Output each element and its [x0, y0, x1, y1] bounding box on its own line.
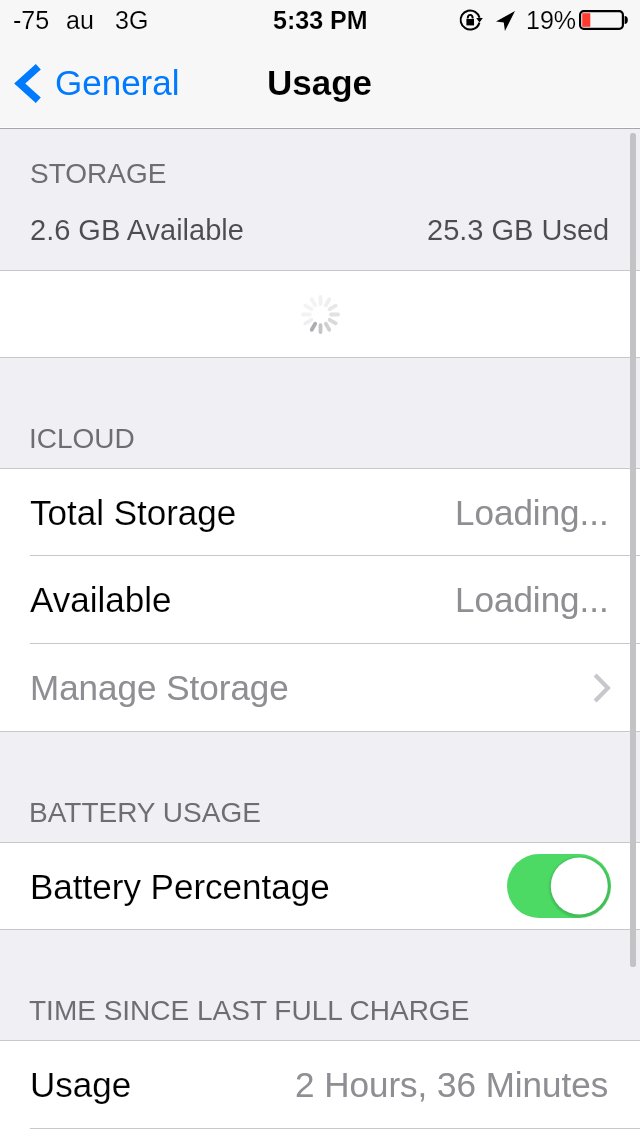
button[interactable]: Battery Percentage	[0, 843, 640, 929]
button[interactable]: General	[0, 40, 194, 127]
staticText: Manage Storage	[30, 668, 289, 707]
staticText: Usage	[267, 63, 373, 102]
staticText: au	[66, 6, 94, 34]
staticText: Battery Percentage	[30, 867, 330, 906]
staticText: 5:33 PM	[273, 6, 368, 34]
button[interactable]: Usage	[0, 1041, 640, 1128]
staticText: STORAGE	[30, 158, 167, 189]
staticText: General	[55, 63, 180, 102]
other: Rotation lock	[460, 9, 483, 31]
staticText: BATTERY USAGE	[29, 797, 261, 828]
staticText: Loading...	[455, 493, 609, 532]
button[interactable]: Battery Percentage switch, on	[507, 854, 611, 918]
staticText: TIME SINCE LAST FULL CHARGE	[29, 995, 470, 1026]
staticText: Loading...	[455, 580, 609, 619]
button[interactable]: Total Storage	[0, 469, 640, 555]
other: Location	[496, 11, 515, 31]
staticText: ICLOUD	[29, 423, 135, 454]
staticText: Total Storage	[30, 493, 237, 532]
button[interactable]: Manage Storage	[0, 644, 640, 731]
other: Battery	[579, 10, 628, 30]
button[interactable]: Available	[0, 556, 640, 643]
staticText: 2.6 GB Available	[30, 214, 244, 246]
staticText: -75	[13, 6, 50, 34]
staticText: 2 Hours, 36 Minutes	[295, 1065, 609, 1104]
staticText: Usage	[30, 1065, 132, 1104]
staticText: 19%	[526, 6, 577, 34]
staticText: 25.3 GB Used	[427, 214, 610, 246]
staticText: Available	[30, 580, 172, 619]
staticText: 3G	[115, 6, 149, 34]
